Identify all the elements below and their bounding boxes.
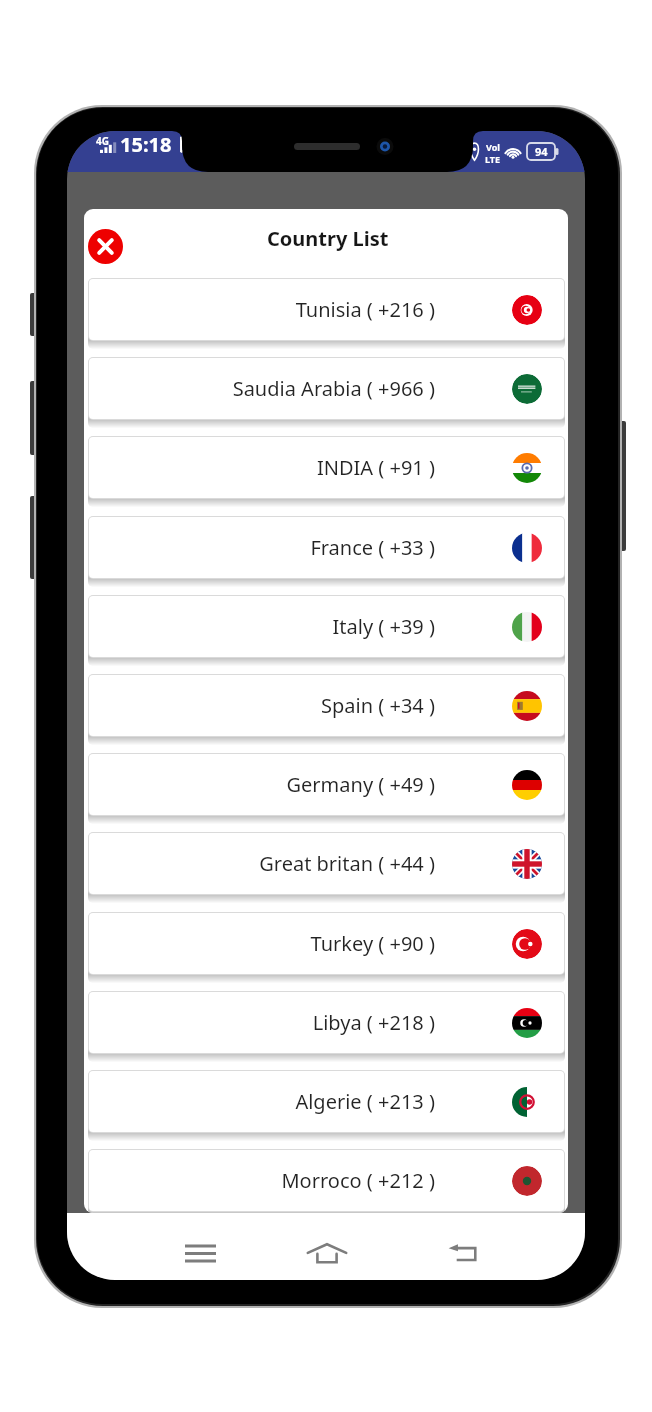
staticText: France ( +33 ) — [89, 534, 435, 561]
button[interactable]: Algerie ( +213 ) — [88, 1070, 565, 1133]
button[interactable]: Tunisia ( +216 ) — [88, 278, 565, 341]
button[interactable]: INDIA ( +91 ) — [88, 436, 565, 499]
staticText: Tunisia ( +216 ) — [89, 296, 435, 323]
button[interactable]: Morroco ( +212 ) — [88, 1149, 565, 1212]
button[interactable]: Close — [88, 229, 123, 264]
staticText: Italy ( +39 ) — [89, 613, 435, 640]
staticText: Great britan ( +44 ) — [89, 850, 435, 877]
button[interactable]: Germany ( +49 ) — [88, 753, 565, 816]
button[interactable]: Home — [303, 1229, 351, 1277]
button[interactable]: Libya ( +218 ) — [88, 991, 565, 1054]
staticText: Country List — [267, 225, 389, 252]
staticText: LTE — [485, 153, 501, 165]
staticText: 15:18 — [120, 131, 172, 158]
staticText: Vol — [486, 141, 500, 153]
staticText: Algerie ( +213 ) — [89, 1088, 435, 1115]
staticText: Turkey ( +90 ) — [89, 930, 435, 957]
staticText: Libya ( +218 ) — [89, 1009, 435, 1036]
button[interactable]: Italy ( +39 ) — [88, 595, 565, 658]
button[interactable]: France ( +33 ) — [88, 516, 565, 579]
button[interactable]: Saudia Arabia ( +966 ) — [88, 357, 565, 420]
staticText: INDIA ( +91 ) — [89, 454, 435, 481]
staticText: 94 — [535, 144, 548, 159]
staticText: Saudia Arabia ( +966 ) — [89, 375, 435, 402]
button[interactable]: Turkey ( +90 ) — [88, 912, 565, 975]
staticText: Germany ( +49 ) — [89, 771, 435, 798]
button[interactable]: Spain ( +34 ) — [88, 674, 565, 737]
staticText: 4G — [96, 134, 109, 148]
button[interactable]: Recent apps — [176, 1229, 224, 1277]
button[interactable]: Great britan ( +44 ) — [88, 832, 565, 895]
button[interactable]: Back — [439, 1229, 487, 1277]
staticText: Morroco ( +212 ) — [89, 1167, 435, 1194]
staticText: Spain ( +34 ) — [89, 692, 435, 719]
